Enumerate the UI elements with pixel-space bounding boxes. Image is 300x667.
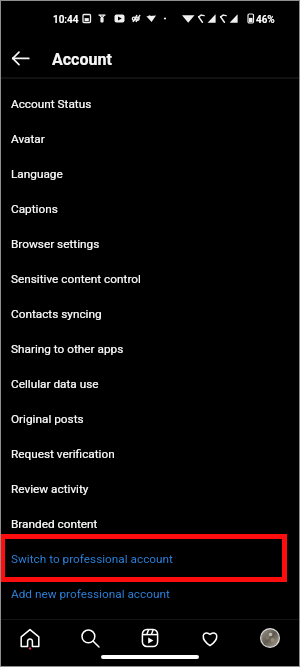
- staticText: Original posts: [11, 412, 84, 426]
- button[interactable]: Activity: [180, 616, 240, 660]
- staticText: Switch to professional account: [11, 552, 173, 566]
- staticText: Branded content: [11, 517, 98, 531]
- button[interactable]: Switch to professional account: [0, 541, 300, 576]
- button[interactable]: Original posts: [0, 401, 300, 436]
- staticText: Sensitive content control: [11, 272, 141, 286]
- staticText: Browser settings: [11, 237, 100, 251]
- staticText: Account: [52, 50, 112, 69]
- button[interactable]: Review activity: [0, 471, 300, 506]
- button[interactable]: Sharing to other apps: [0, 331, 300, 366]
- staticText: Account Status: [11, 97, 92, 111]
- staticText: Avatar: [11, 132, 45, 146]
- button[interactable]: Add new professional account: [0, 576, 300, 611]
- staticText: Language: [11, 167, 63, 181]
- staticText: Review activity: [11, 482, 89, 496]
- button[interactable]: Avatar: [0, 121, 300, 156]
- staticText: 10:44: [53, 14, 79, 26]
- button[interactable]: Request verification: [0, 436, 300, 471]
- staticText: Cellular data use: [11, 377, 99, 391]
- button[interactable]: Reels: [120, 616, 180, 660]
- staticText: Captions: [11, 202, 58, 216]
- button[interactable]: Contacts syncing: [0, 296, 300, 331]
- button[interactable]: Home: [0, 616, 60, 660]
- button[interactable]: Search: [60, 616, 120, 660]
- staticText: Request verification: [11, 447, 115, 461]
- button[interactable]: Sensitive content control: [0, 261, 300, 296]
- button[interactable]: Cellular data use: [0, 366, 300, 401]
- button[interactable]: Back: [8, 44, 36, 72]
- button[interactable]: Captions: [0, 191, 300, 226]
- staticText: Sharing to other apps: [11, 342, 124, 356]
- button[interactable]: Account Status: [0, 86, 300, 121]
- button[interactable]: Language: [0, 156, 300, 191]
- staticText: Contacts syncing: [11, 307, 102, 321]
- staticText: Add new professional account: [11, 587, 170, 601]
- button[interactable]: Browser settings: [0, 226, 300, 261]
- button[interactable]: Profile: [240, 616, 300, 660]
- staticText: 46%: [256, 14, 275, 26]
- button[interactable]: Branded content: [0, 506, 300, 541]
